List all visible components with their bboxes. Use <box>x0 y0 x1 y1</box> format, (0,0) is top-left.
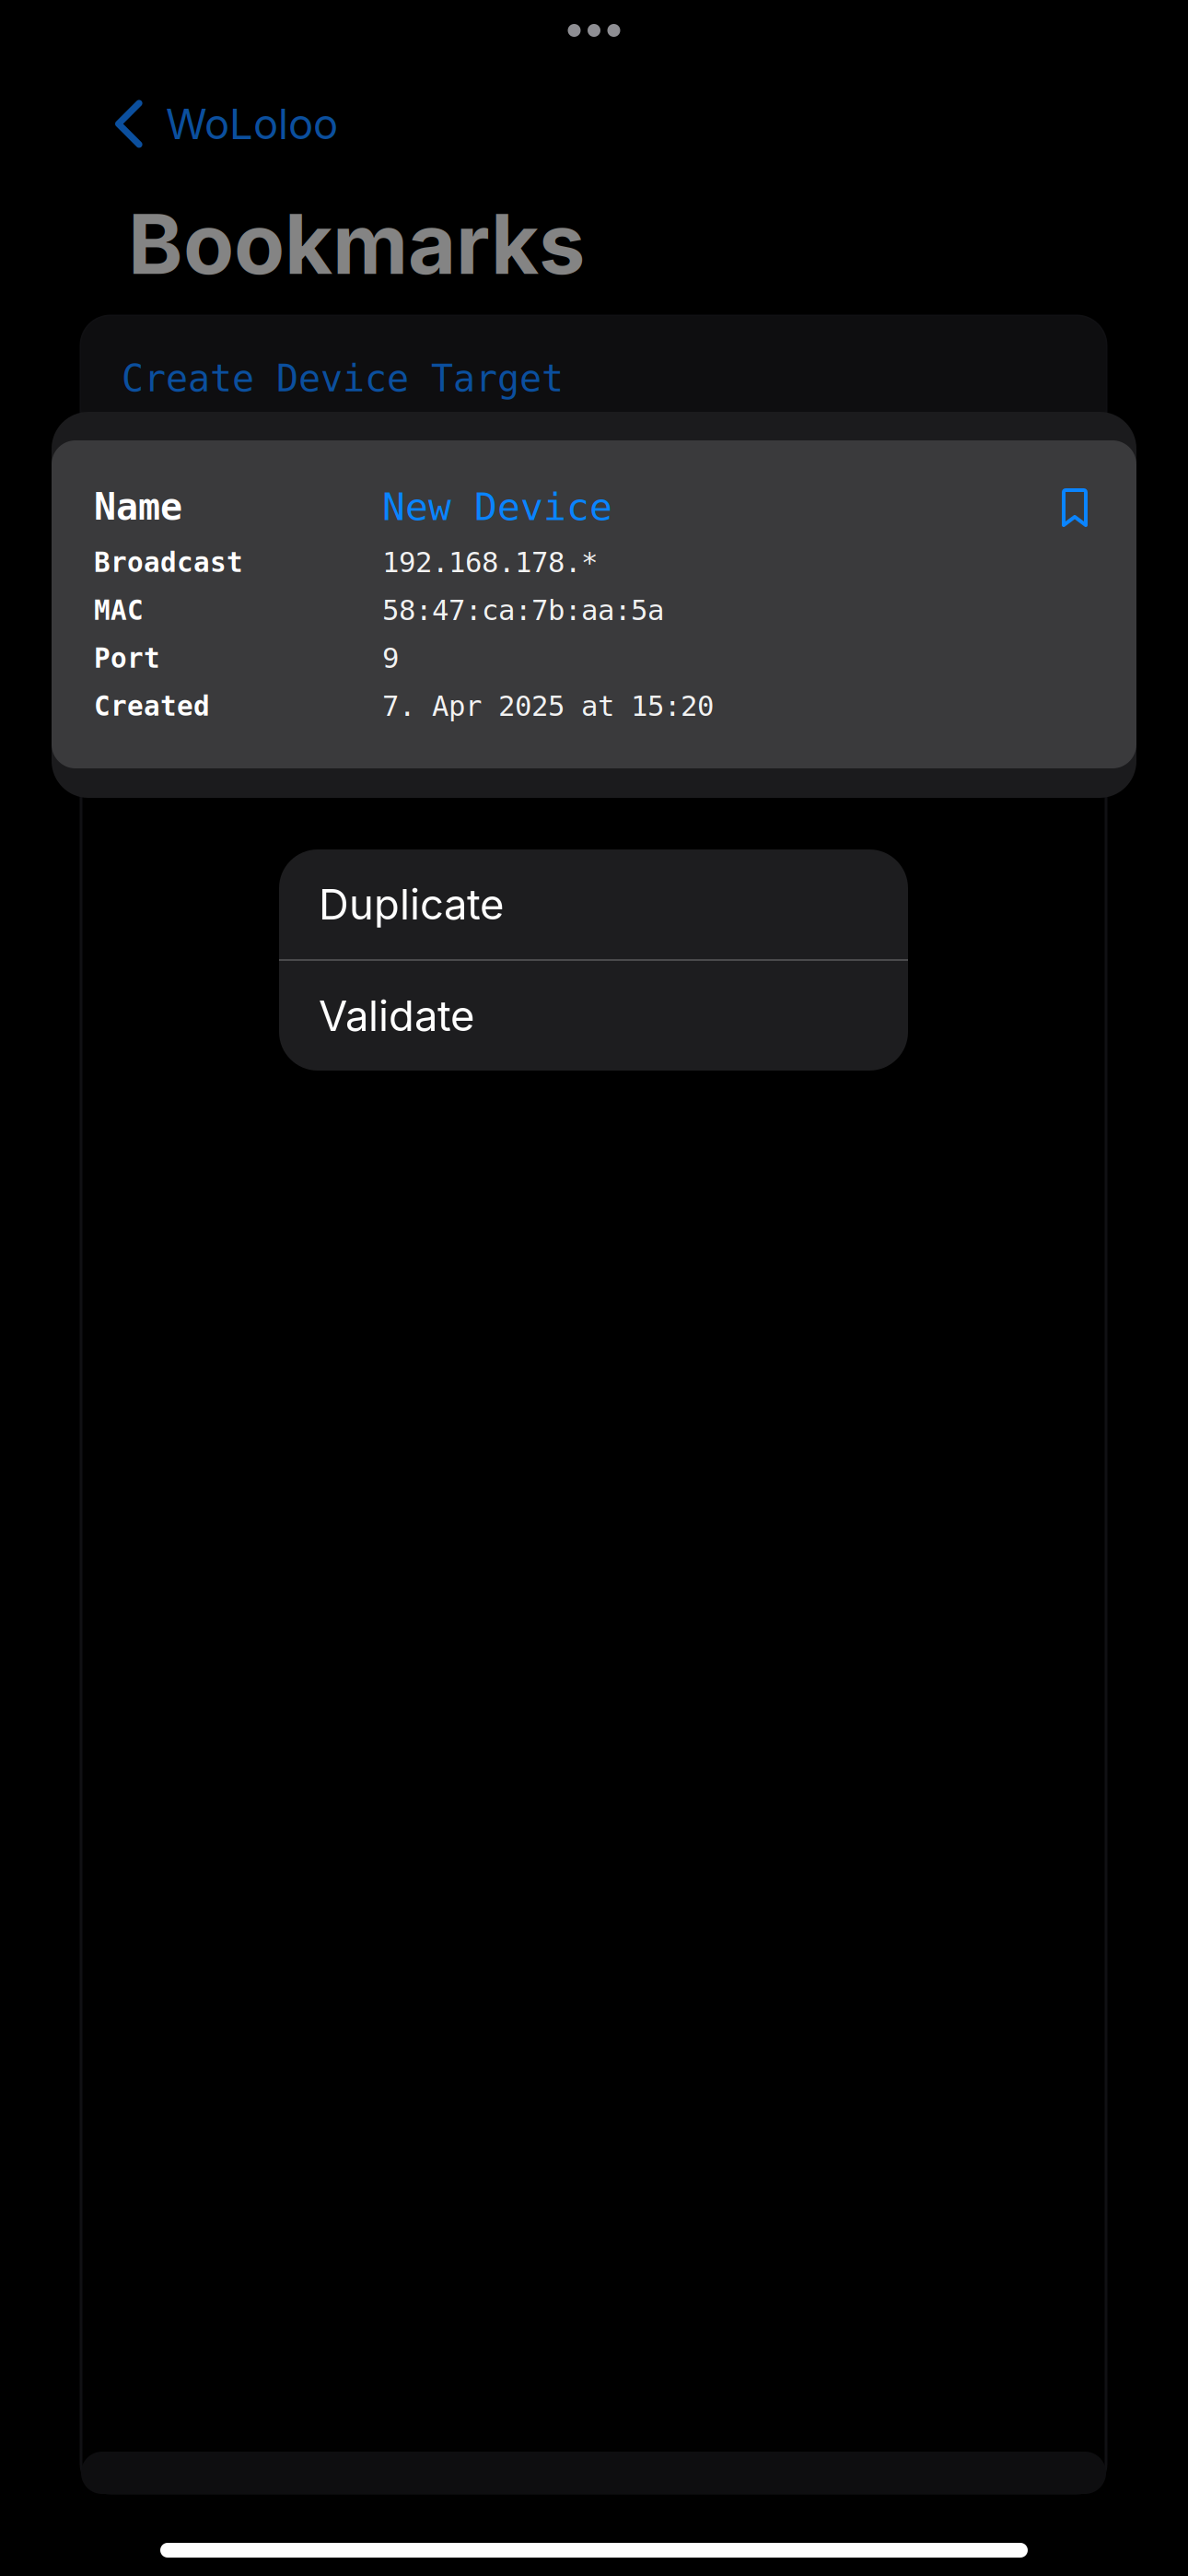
staticText: Create Device Target <box>122 357 564 400</box>
staticText: 58:47:ca:7b:aa:5a <box>382 594 664 627</box>
staticText: New Device <box>382 485 612 529</box>
staticText: 192.168.178.* <box>382 546 598 579</box>
staticText: MAC <box>94 595 144 626</box>
staticText: Bookmarks <box>128 193 585 294</box>
staticText: 7. Apr 2025 at 15:20 <box>382 690 714 723</box>
button[interactable]: Create Device Target <box>81 316 1106 436</box>
staticText: Broadcast <box>94 547 243 578</box>
staticText: Created <box>94 690 210 722</box>
staticText: Validate <box>319 991 474 1041</box>
staticText: Duplicate <box>319 879 504 930</box>
button[interactable]: Back to WoLoloo <box>0 83 375 165</box>
staticText: 9 <box>382 642 399 675</box>
button[interactable]: Bookmark <box>1054 481 1098 538</box>
button[interactable]: Validate <box>279 961 908 1071</box>
button[interactable]: Duplicate <box>279 849 908 959</box>
staticText: Port <box>94 643 160 674</box>
staticText: Name <box>94 486 182 528</box>
staticText: WoLoloo <box>166 99 338 149</box>
